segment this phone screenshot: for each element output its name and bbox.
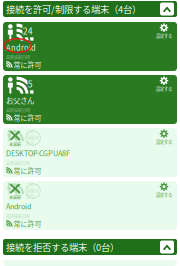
- staticText: 常に許可: [13, 59, 41, 69]
- staticText: 常に許可: [13, 218, 41, 228]
- staticText: 未接続: [9, 141, 21, 147]
- staticText: 常に許可: [13, 165, 41, 175]
- button[interactable]: 接続を拒否する端末（0台）: [3, 239, 177, 255]
- staticText: 最終接続日時: [6, 54, 30, 60]
- button[interactable]: 24: [3, 22, 177, 71]
- staticText: 接続を: [27, 135, 39, 141]
- staticText: 設定する: [156, 191, 172, 198]
- staticText: 5: [28, 77, 33, 90]
- staticText: 設定する: [156, 32, 172, 39]
- staticText: 接続を許可/制限する端末（4台）: [6, 2, 141, 16]
- staticText: 許可済み: [26, 194, 40, 200]
- button[interactable]: 設定する: [153, 183, 175, 197]
- button[interactable]: 未接続: [3, 181, 177, 230]
- button[interactable]: 設定する: [153, 77, 175, 91]
- staticText: 最終接続日時: [6, 160, 30, 166]
- staticText: 24: [23, 24, 33, 37]
- staticText: 設定する: [156, 85, 172, 92]
- staticText: 接続を: [27, 188, 39, 194]
- staticText: 最終接続日時: [6, 213, 30, 219]
- button[interactable]: 5: [3, 75, 177, 124]
- staticText: この端末は: [26, 129, 40, 135]
- staticText: Android: [6, 42, 36, 53]
- button[interactable]: 接続を許可/制限する端末（4台）: [3, 1, 177, 17]
- staticText: 許可済み: [26, 141, 40, 147]
- button[interactable]: 未接続: [3, 128, 177, 177]
- staticText: 最終接続日時: [6, 107, 30, 113]
- staticText: DESKTOP-CGPUA8F: [6, 148, 70, 158]
- button[interactable]: 設定する: [153, 130, 175, 144]
- staticText: お父さん: [6, 95, 34, 106]
- staticText: 常に許可: [13, 112, 41, 122]
- button[interactable]: 設定する: [153, 24, 175, 38]
- staticText: 設定する: [156, 138, 172, 145]
- staticText: 接続を拒否する端末（0台）: [6, 240, 119, 254]
- staticText: Android: [6, 201, 31, 211]
- staticText: この端末は: [26, 182, 40, 188]
- staticText: 未接続: [9, 194, 21, 200]
